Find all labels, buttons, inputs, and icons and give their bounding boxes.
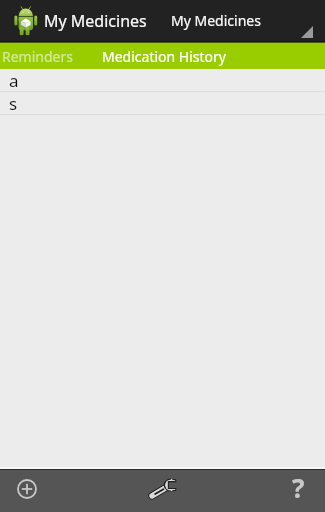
other: Open list: [301, 26, 313, 38]
button[interactable]: Settings: [139, 470, 187, 512]
staticText: Reminders: [2, 47, 73, 66]
button[interactable]: Add: [3, 470, 51, 512]
button[interactable]: My Medicines: [0, 0, 147, 41]
button[interactable]: Help: [274, 470, 322, 512]
staticText: s: [9, 92, 18, 114]
staticText: My Medicines: [171, 11, 261, 30]
button[interactable]: s: [0, 92, 325, 114]
staticText: ?: [292, 470, 305, 505]
staticText: Medication History: [102, 47, 226, 66]
staticText: a: [9, 69, 19, 91]
button[interactable]: Reminders: [0, 43, 80, 69]
button[interactable]: My Medicines: [171, 0, 325, 41]
button[interactable]: Medication History: [86, 43, 241, 69]
staticText: My Medicines: [44, 10, 147, 32]
button[interactable]: a: [0, 69, 325, 91]
